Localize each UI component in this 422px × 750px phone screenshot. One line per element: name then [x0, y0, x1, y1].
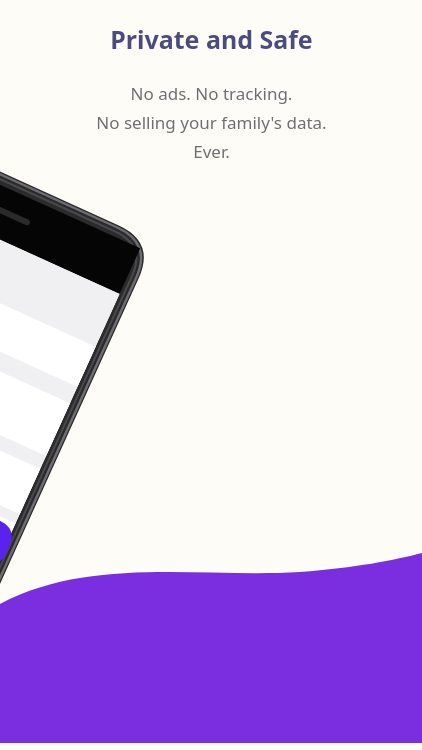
staticText: Private and Safe — [110, 22, 313, 56]
staticText: No ads. No tracking. No selling your fam… — [96, 82, 327, 163]
button[interactable]: Private and Safe — [0, 22, 422, 163]
other: Chat app preview on phone — [0, 0, 422, 750]
